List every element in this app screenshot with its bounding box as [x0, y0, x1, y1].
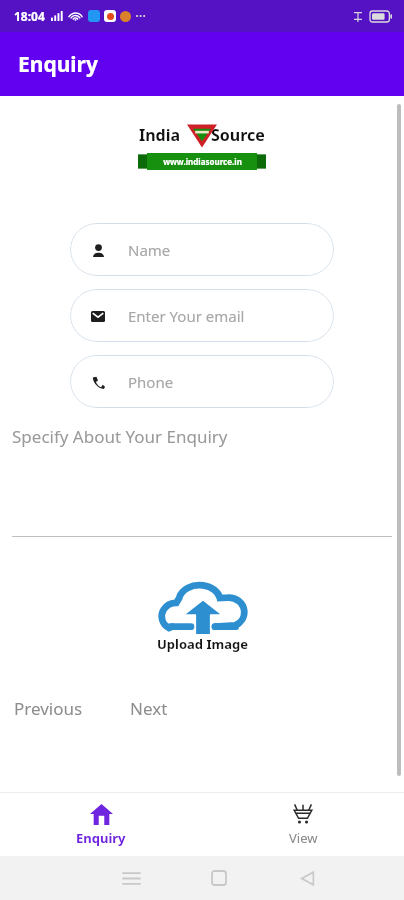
staticText: Phone	[128, 372, 174, 392]
button[interactable]: Recents	[87, 856, 175, 900]
staticText: Previous	[14, 697, 83, 720]
staticText: India	[139, 124, 181, 146]
button[interactable]: Back	[263, 856, 351, 900]
staticText: Next	[130, 697, 168, 720]
button[interactable]: Name	[70, 223, 334, 276]
staticText: View	[289, 829, 318, 847]
button[interactable]: Upload Image	[157, 582, 248, 653]
button[interactable]: Next	[124, 693, 174, 724]
staticText: www.indiasource.in	[163, 156, 242, 167]
staticText: Enquiry	[76, 829, 126, 847]
button[interactable]: Phone	[70, 355, 334, 408]
button[interactable]: Enter Your email	[70, 289, 334, 342]
staticText: 18:04	[14, 8, 45, 24]
staticText: Source	[211, 124, 265, 146]
staticText: Specify About Your Enquiry	[12, 425, 228, 448]
staticText: Upload Image	[157, 635, 248, 653]
button[interactable]: Previous	[8, 693, 89, 724]
button[interactable]: Enquiry	[0, 792, 202, 856]
button[interactable]: Home	[175, 856, 263, 900]
staticText: Name	[128, 240, 171, 260]
button[interactable]: View	[202, 792, 404, 856]
staticText: Enter Your email	[128, 306, 245, 326]
staticText: Enquiry	[18, 50, 98, 79]
